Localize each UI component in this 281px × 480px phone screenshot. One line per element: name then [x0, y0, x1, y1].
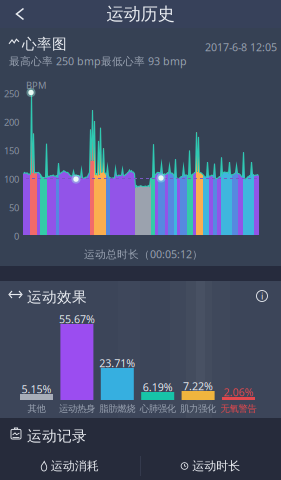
button[interactable]: 运动时长 — [140, 454, 281, 478]
staticText: 55.67% — [59, 312, 95, 326]
staticText: 肌力强化 — [180, 403, 216, 414]
staticText: 2.06% — [223, 385, 253, 399]
staticText: 最高心率 250 bmp — [9, 54, 101, 68]
staticText: 50 — [9, 201, 19, 214]
staticText: 心率图 — [22, 35, 67, 53]
staticText: BPM — [26, 79, 46, 91]
staticText: 250 — [4, 87, 19, 100]
staticText: 6.19% — [143, 380, 173, 394]
staticText: 其他 — [27, 403, 45, 414]
button[interactable]: 运动消耗 — [0, 454, 140, 478]
staticText: 最低心率 93 bmp — [101, 54, 187, 68]
staticText: 运动记录 — [27, 427, 87, 445]
staticText: i — [261, 290, 263, 302]
staticText: 2017-6-8 12:05 — [205, 40, 277, 54]
staticText: 运动历史 — [106, 3, 174, 25]
staticText: 0 — [14, 230, 19, 242]
staticText: 运动消耗 — [51, 459, 99, 473]
staticText: 7.22% — [183, 379, 213, 393]
staticText: 23.71% — [99, 356, 135, 370]
staticText: 无氧警告 — [220, 403, 256, 414]
staticText: 5.15% — [21, 382, 51, 396]
button[interactable]: Back — [5, 0, 35, 28]
staticText: 200 — [4, 116, 19, 128]
button[interactable]: Info — [253, 287, 271, 305]
staticText: 脂肪燃烧 — [99, 403, 135, 414]
staticText: 心肺强化 — [140, 403, 176, 414]
staticText: 运动总时长（00:05:12） — [84, 247, 203, 261]
staticText: 运动热身 — [59, 403, 95, 414]
staticText: 150 — [4, 144, 19, 157]
staticText: 运动效果 — [27, 288, 87, 306]
staticText: 运动时长 — [192, 459, 240, 473]
staticText: 100 — [4, 173, 19, 185]
